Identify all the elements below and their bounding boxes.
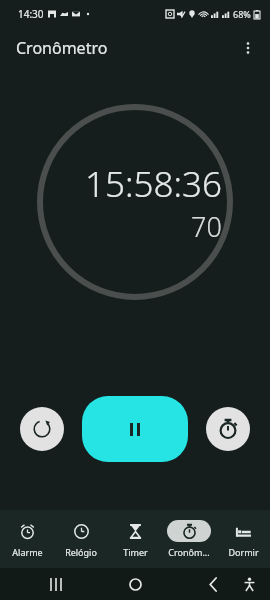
staticText: Alarme [12,546,43,558]
button[interactable]: Lap [206,407,250,451]
staticText: Timer [123,546,148,558]
button[interactable]: Cronôm... [162,520,216,558]
button[interactable]: Back [198,569,228,599]
staticText: Relógio [65,546,97,558]
button[interactable]: Reset [20,407,64,451]
button[interactable]: Alarme [0,520,54,558]
staticText: 70 [191,208,222,245]
staticText: Cronômetro [16,37,108,59]
staticText: 14:30 [18,7,44,21]
button[interactable]: Relógio [54,520,108,558]
button[interactable]: Timer [108,520,162,558]
button[interactable]: Accessibility [236,571,262,597]
button[interactable]: Dormir [216,520,270,558]
button[interactable]: Recents [42,569,72,599]
button[interactable]: Home [120,569,150,599]
staticText: Cronôm... [168,546,210,558]
button[interactable]: More options [232,32,264,64]
staticText: 68% [233,8,251,20]
staticText: Dormir [228,546,259,558]
button[interactable]: Pause [82,396,188,462]
staticText: 15:58:36 [85,160,222,208]
